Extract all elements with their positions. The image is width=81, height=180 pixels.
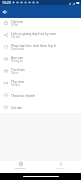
button[interactable]: Phan loai hoc sinh theo lop h bbox=[0, 41, 81, 53]
button[interactable]: Thao tac nhanh bbox=[0, 89, 81, 101]
button[interactable]: Back bbox=[2, 9, 8, 15]
staticText: Phan loai hoc sinh theo lop h bbox=[11, 43, 56, 47]
staticText: Thu vien bbox=[11, 79, 25, 83]
staticText: 8 Tiet bbox=[11, 23, 18, 27]
staticText: Tai lieu bbox=[11, 83, 20, 87]
staticText: Cai dat bbox=[11, 105, 22, 109]
staticText: Tat ca bbox=[11, 71, 19, 75]
button[interactable]: Lich su giang day hoc ky nam bbox=[0, 29, 81, 41]
staticText: Lich su giang day hoc ky nam bbox=[11, 31, 57, 35]
button[interactable]: Cai dat bbox=[0, 101, 81, 113]
staticText: Danh sach bbox=[11, 47, 25, 51]
staticText: Bao cao bbox=[11, 55, 24, 59]
staticText: Thong ke bbox=[11, 59, 23, 63]
button[interactable]: Ca nhan bbox=[40, 161, 81, 173]
staticText: Ca nhan bbox=[56, 167, 65, 170]
button[interactable]: Bao cao bbox=[0, 53, 81, 65]
staticText: 10:29 bbox=[2, 0, 11, 5]
button[interactable]: Thu vien bbox=[0, 77, 81, 89]
staticText: Tin nhan bbox=[11, 67, 25, 71]
button[interactable]: Danh sach bbox=[0, 161, 40, 173]
button[interactable]: Tiet hoc bbox=[0, 17, 81, 29]
staticText: Tiet hoc bbox=[11, 19, 24, 23]
button[interactable]: Tin nhan bbox=[0, 65, 81, 77]
staticText: Thao tac nhanh bbox=[11, 93, 36, 97]
staticText: Danh sach bbox=[15, 167, 26, 170]
staticText: Chi tiet bbox=[11, 35, 20, 39]
